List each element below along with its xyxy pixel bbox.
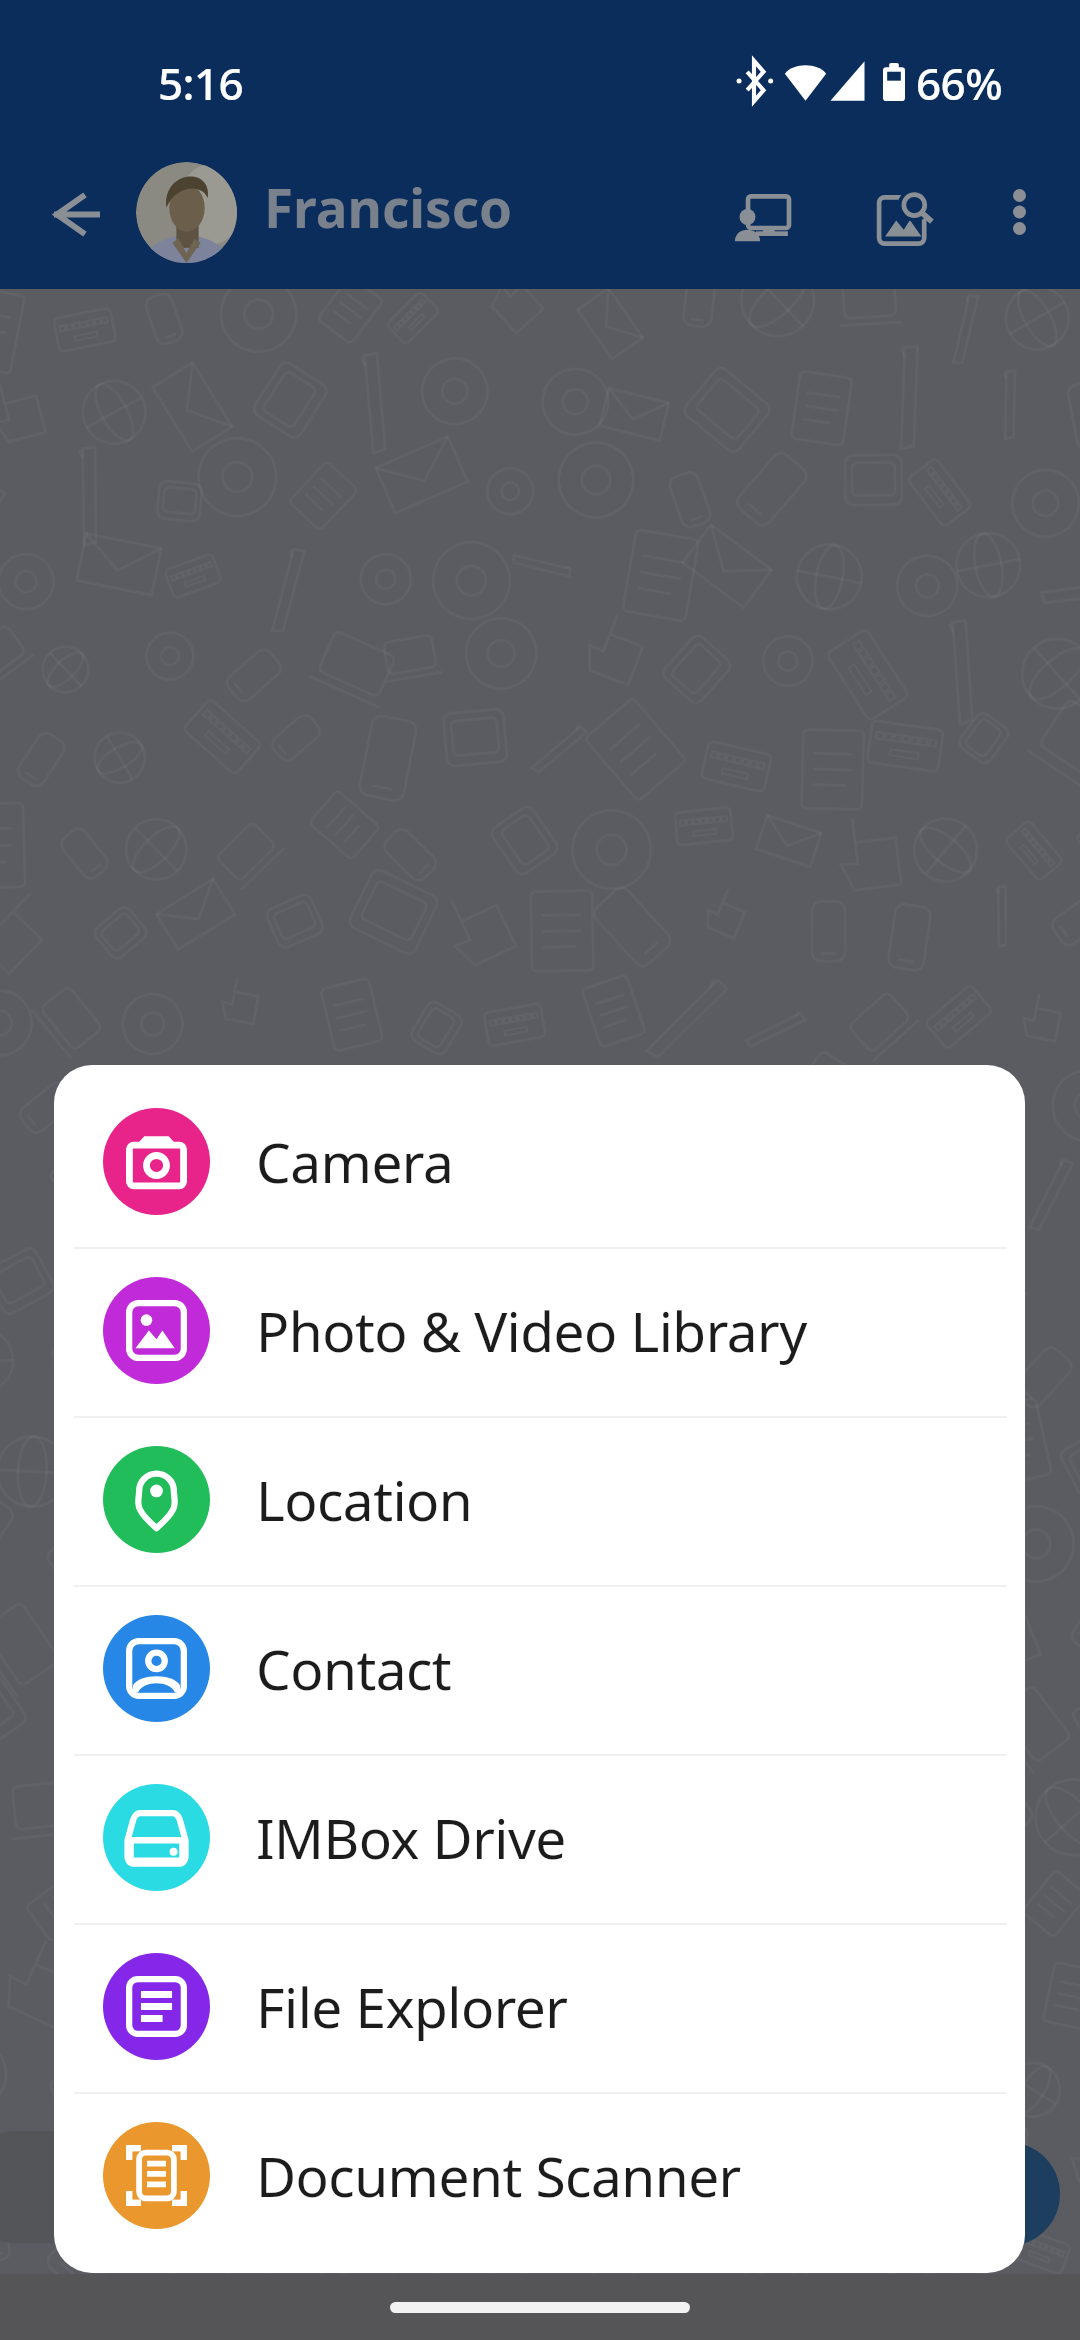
button[interactable]: Message input (0, 2131, 220, 2243)
button[interactable]: Francisco (250, 150, 660, 270)
staticText: Location (256, 1462, 473, 1537)
button[interactable]: Location (54, 1418, 1025, 1587)
button[interactable]: Search images (850, 165, 960, 275)
button[interactable]: Profile photo (136, 162, 237, 263)
staticText: Photo & Video Library (256, 1293, 807, 1368)
staticText: Camera (256, 1124, 454, 1199)
staticText: File Explorer (256, 1969, 568, 2044)
button[interactable]: Contact (54, 1587, 1025, 1756)
button[interactable]: Share screen (706, 167, 816, 277)
staticText: Francisco (264, 171, 513, 243)
staticText: 5:16 (158, 53, 244, 113)
button[interactable]: Photo & Video Library (54, 1249, 1025, 1418)
button[interactable]: Camera (54, 1080, 1025, 1249)
staticText: Contact (256, 1631, 452, 1706)
staticText: IMBox Drive (256, 1800, 566, 1875)
staticText: 66% (916, 53, 1003, 113)
button[interactable]: IMBox Drive (54, 1756, 1025, 1925)
button[interactable]: Document Scanner (54, 2094, 1025, 2263)
button[interactable]: More options (964, 157, 1074, 267)
button[interactable]: File Explorer (54, 1925, 1025, 2094)
button[interactable]: Send (956, 2142, 1060, 2246)
staticText: Document Scanner (256, 2138, 741, 2213)
button[interactable]: Back (22, 159, 132, 269)
